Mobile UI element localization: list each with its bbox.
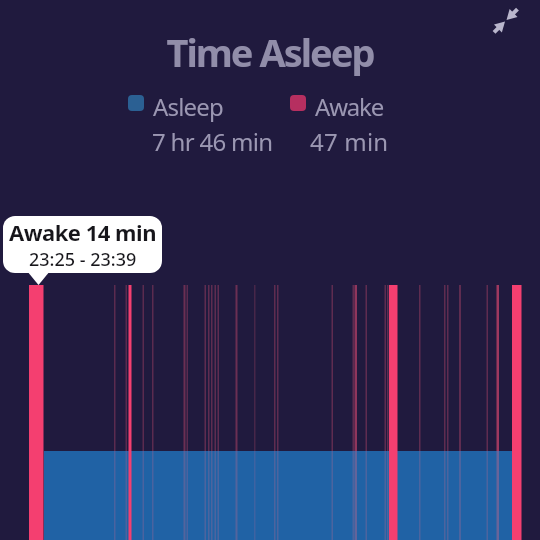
button[interactable]: Awake 14 min	[3, 216, 162, 273]
staticText: 47 min	[310, 125, 389, 158]
staticText: Awake	[315, 90, 384, 123]
staticText: Awake 14 min	[9, 217, 156, 247]
staticText: 7 hr 46 min	[152, 125, 273, 158]
staticText: Time Asleep	[0, 26, 540, 78]
staticText: 23:25 - 23:39	[29, 247, 137, 272]
button[interactable]	[487, 0, 529, 42]
staticText: Asleep	[153, 90, 224, 123]
